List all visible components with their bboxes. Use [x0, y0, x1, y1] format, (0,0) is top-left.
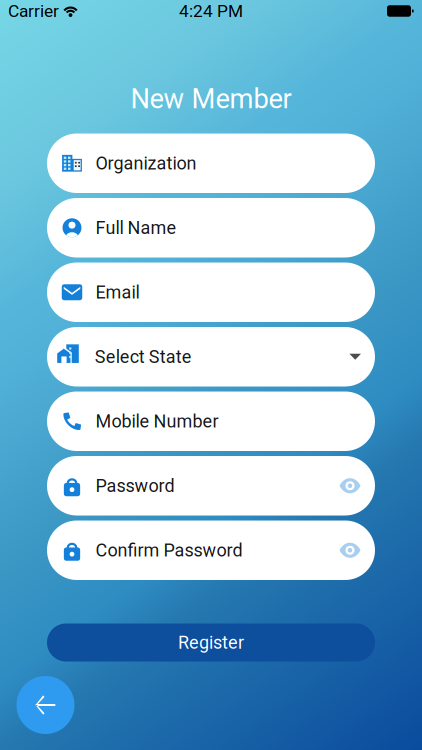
staticText: Confirm Password — [95, 540, 242, 561]
button[interactable]: Organization — [47, 133, 375, 193]
button[interactable]: Back — [16, 676, 74, 734]
staticText: 4:24 PM — [179, 1, 243, 21]
staticText: Select State — [95, 346, 192, 367]
button[interactable]: Select State — [47, 327, 375, 386]
button[interactable]: Email — [47, 262, 375, 322]
staticText: Carrier — [8, 1, 59, 21]
staticText: Email — [95, 282, 139, 303]
staticText: New Member — [130, 83, 291, 115]
button[interactable]: Full Name — [47, 198, 375, 257]
staticText: Register — [178, 632, 244, 653]
button[interactable]: Mobile Number — [47, 391, 375, 451]
staticText: Full Name — [95, 217, 176, 238]
button[interactable]: Password — [47, 456, 375, 515]
button[interactable]: Confirm Password — [47, 520, 375, 580]
staticText: Password — [95, 475, 174, 496]
button[interactable]: Register — [47, 623, 375, 661]
staticText: Mobile Number — [95, 411, 218, 432]
staticText: Organization — [95, 153, 196, 174]
